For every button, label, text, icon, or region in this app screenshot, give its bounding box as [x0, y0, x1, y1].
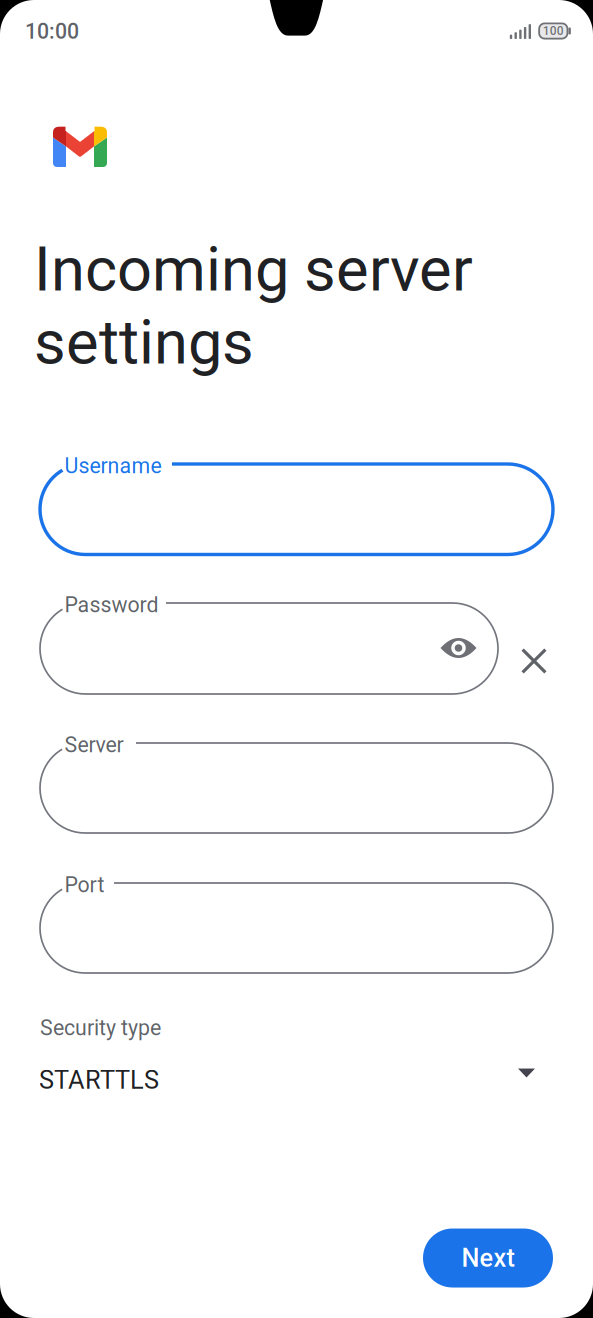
button[interactable]: STARTTLS: [39, 1049, 552, 1095]
button[interactable]: Username: [40, 464, 553, 554]
button[interactable]: Clear: [509, 636, 559, 686]
staticText: Next: [461, 1243, 514, 1273]
staticText: Server: [65, 732, 124, 757]
button[interactable]: Show password: [433, 623, 483, 673]
button[interactable]: Port: [40, 883, 553, 973]
staticText: STARTTLS: [39, 1065, 159, 1095]
staticText: Incoming server: [34, 234, 473, 305]
button[interactable]: Password: [40, 603, 498, 694]
staticText: settings: [34, 306, 254, 378]
staticText: 100: [543, 24, 564, 38]
button[interactable]: Server: [40, 743, 553, 833]
staticText: 10:00: [25, 19, 79, 44]
staticText: Security type: [40, 1015, 161, 1040]
staticText: Password: [65, 592, 159, 617]
button[interactable]: Next: [423, 1228, 553, 1287]
staticText: Port: [65, 872, 105, 897]
staticText: Username: [65, 453, 162, 478]
